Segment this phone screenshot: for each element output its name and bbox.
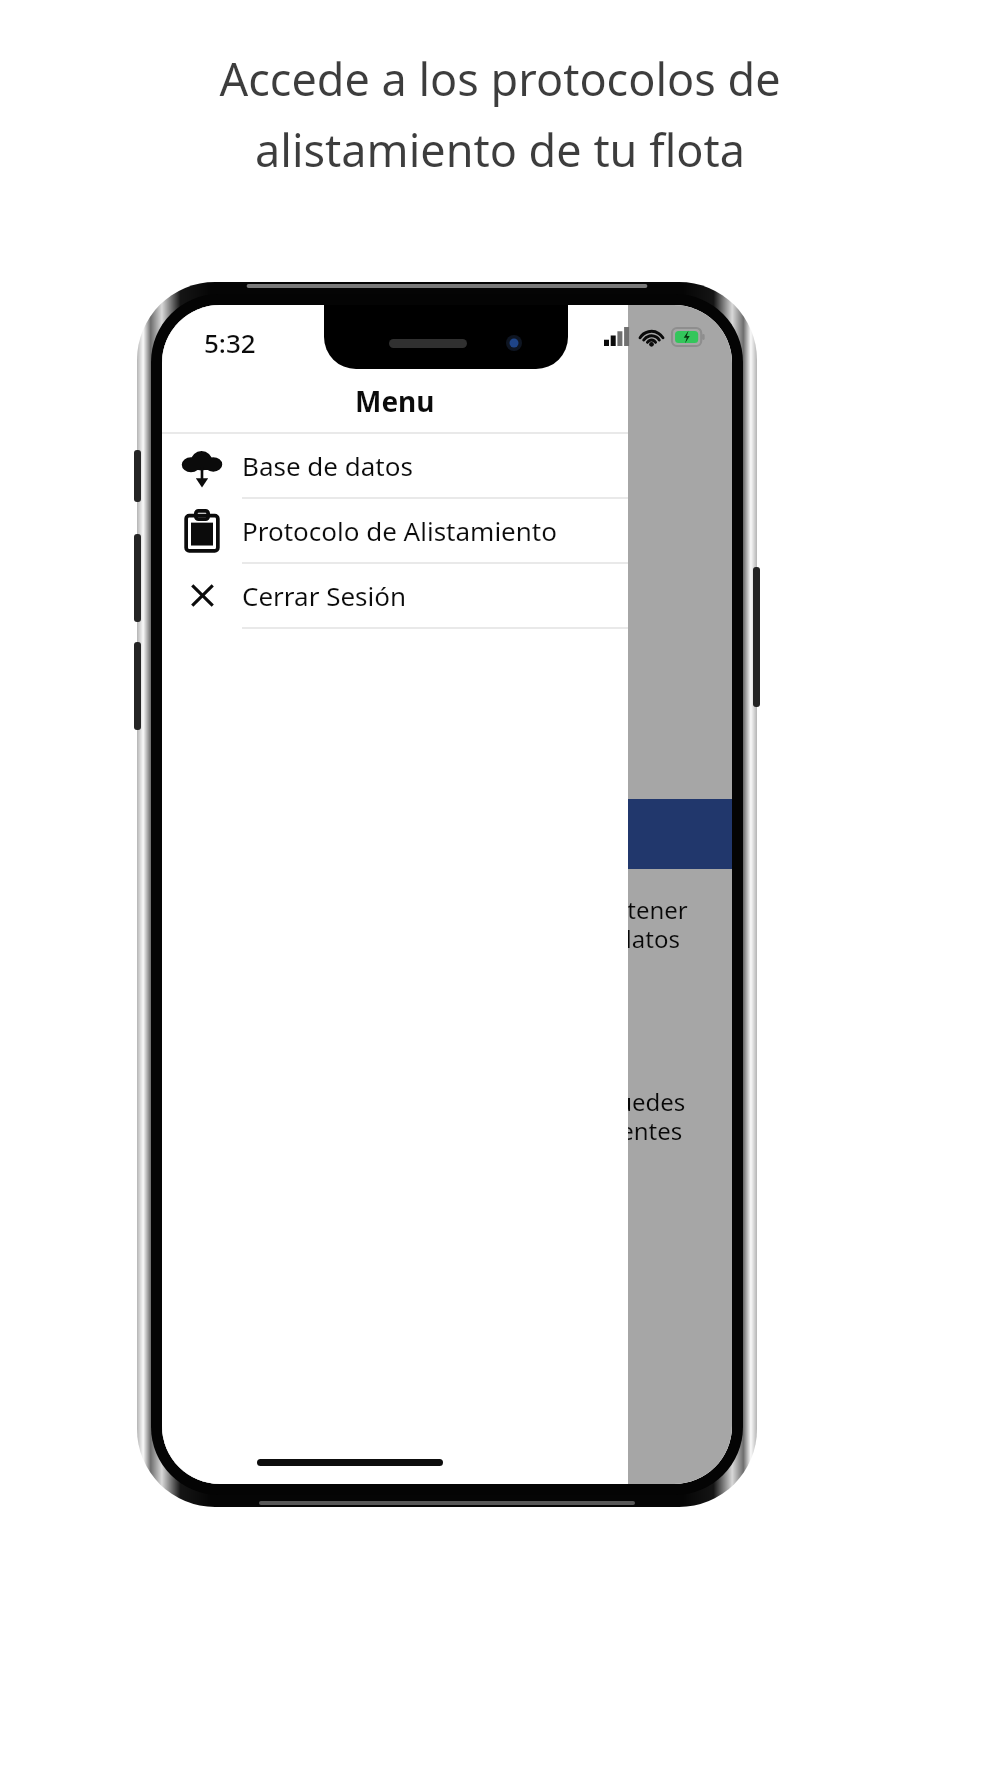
staticText: Accede a los protocolos de bbox=[219, 48, 781, 109]
other: Protocolo de Alistamiento bbox=[180, 509, 224, 553]
other: Base de datos bbox=[180, 444, 224, 488]
staticText: Protocolo de Alistamiento bbox=[242, 513, 557, 548]
staticText: ya puedes bbox=[558, 1085, 686, 1118]
staticText: Menu bbox=[355, 382, 435, 420]
other: Cerrar Sesión bbox=[186, 579, 219, 612]
staticText: s diferentes bbox=[544, 1114, 683, 1147]
button[interactable] bbox=[557, 799, 732, 869]
staticText: e de datos bbox=[544, 922, 680, 955]
staticText: Cerrar Sesión bbox=[242, 578, 407, 613]
staticText: Base de datos bbox=[242, 448, 413, 483]
button[interactable]: Cerrar Sesión bbox=[162, 564, 628, 627]
staticText: de tener bbox=[574, 893, 688, 926]
staticText: alistamiento de tu flota bbox=[255, 119, 745, 180]
staticText: 5:32 bbox=[204, 325, 256, 360]
button[interactable]: Base de datos bbox=[162, 434, 628, 497]
button[interactable]: Protocolo de Alistamiento bbox=[162, 499, 628, 562]
